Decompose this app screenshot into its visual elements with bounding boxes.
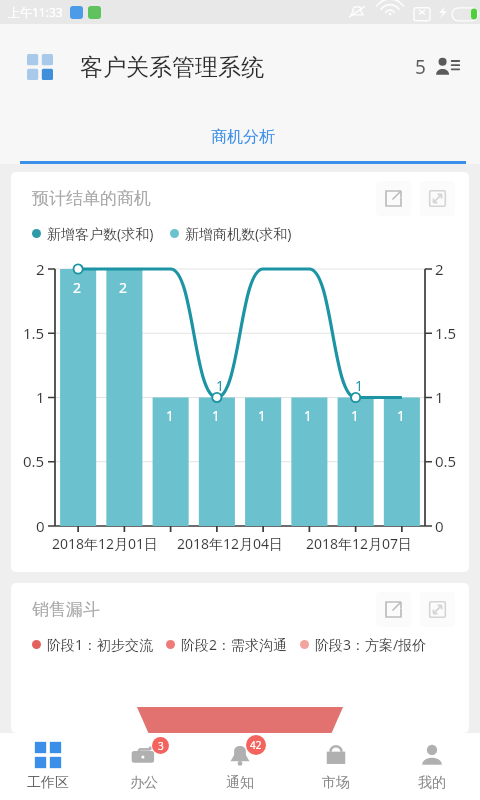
staticText: 1: [435, 387, 444, 407]
staticText: 销售漏斗: [32, 599, 100, 620]
staticText: 2: [435, 259, 444, 279]
staticText: 2: [36, 259, 45, 279]
staticText: 阶段1：初步交流: [47, 635, 154, 654]
button[interactable]: Fullscreen: [420, 592, 455, 627]
staticText: 2018年12月04日: [177, 534, 284, 553]
staticText: 0: [435, 516, 444, 536]
staticText: 2: [73, 278, 82, 297]
button[interactable]: Office: [96, 733, 192, 800]
button[interactable]: Notifications: [192, 733, 288, 800]
staticText: 42: [250, 738, 262, 752]
staticText: 1: [351, 406, 360, 425]
staticText: 0.5: [23, 451, 45, 471]
staticText: 1: [166, 406, 175, 425]
staticText: 1: [304, 406, 313, 425]
staticText: 1: [216, 376, 225, 395]
staticText: 客户关系管理系统: [80, 53, 264, 82]
staticText: 3: [158, 739, 164, 753]
staticText: 上午11:33: [8, 4, 63, 20]
staticText: 工作区: [27, 774, 69, 792]
button[interactable]: 商机分析: [6, 110, 480, 164]
button[interactable]: Market: [288, 733, 384, 800]
staticText: 通知: [226, 774, 254, 792]
other: Workspace: [34, 741, 62, 769]
staticText: 1: [258, 406, 267, 425]
staticText: 0: [36, 516, 45, 536]
staticText: 办公: [130, 774, 158, 792]
staticText: 阶段3：方案/报价: [315, 635, 427, 654]
staticText: 阶段2：需求沟通: [181, 635, 288, 654]
other: Office: [130, 741, 158, 769]
staticText: 我的: [418, 774, 446, 792]
button[interactable]: 5: [409, 46, 466, 88]
staticText: 2018年12月07日: [306, 534, 413, 553]
staticText: 新增客户数(求和): [47, 224, 154, 243]
button[interactable]: Workspace: [0, 733, 96, 800]
staticText: 新增商机数(求和): [185, 224, 292, 243]
staticText: 预计结单的商机: [32, 188, 151, 209]
staticText: 1: [397, 406, 406, 425]
staticText: 2018年12月01日: [52, 534, 159, 553]
button[interactable]: Open in new: [376, 181, 411, 216]
staticText: 商机分析: [211, 127, 275, 147]
button[interactable]: Apps: [20, 47, 60, 87]
staticText: 1: [36, 387, 45, 407]
staticText: 1.5: [23, 323, 45, 343]
staticText: 市场: [322, 774, 350, 792]
other: Notifications: [226, 741, 254, 769]
button[interactable]: Fullscreen: [420, 181, 455, 216]
staticText: 1: [355, 376, 364, 395]
staticText: 5: [415, 54, 426, 80]
button[interactable]: Open in new: [376, 592, 411, 627]
staticText: 1: [212, 406, 221, 425]
other: Members: [434, 54, 460, 80]
other: Mine: [418, 741, 446, 769]
staticText: 2: [119, 278, 128, 297]
button[interactable]: Mine: [384, 733, 480, 800]
staticText: 0.5: [435, 451, 457, 471]
staticText: 1.5: [435, 323, 457, 343]
other: Market: [322, 741, 350, 769]
